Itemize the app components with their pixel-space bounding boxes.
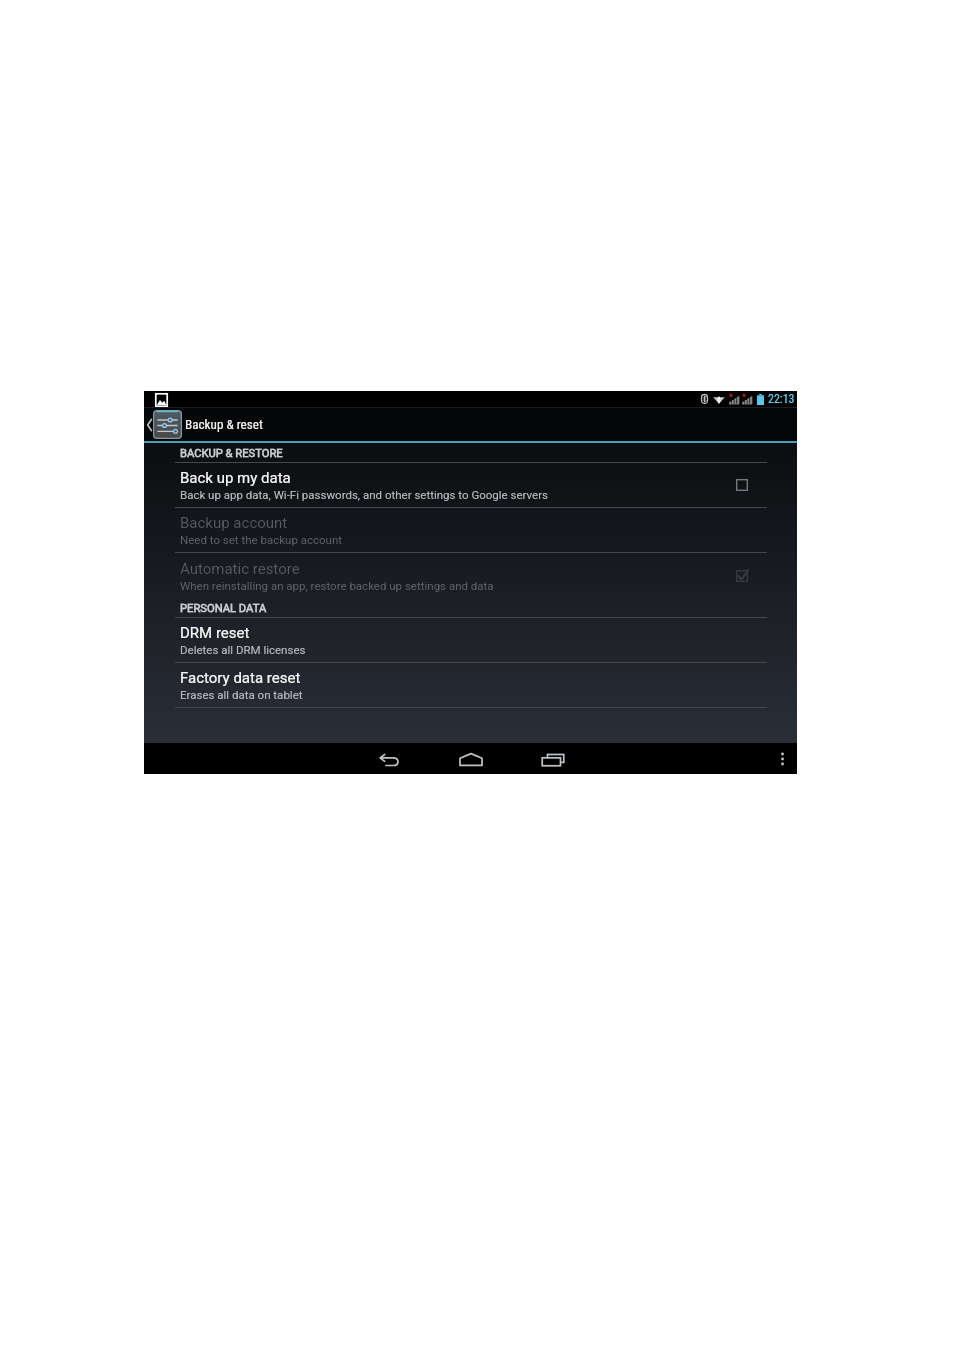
button[interactable]: Home bbox=[430, 743, 512, 774]
button[interactable]: Backup & reset, navigate up bbox=[144, 408, 797, 441]
staticText: Back up my data bbox=[180, 469, 291, 487]
button[interactable]: Recent apps bbox=[512, 743, 594, 774]
button[interactable]: Factory data reset. Erases all data on t… bbox=[144, 663, 797, 708]
button[interactable]: Back up my data. Back up app data, Wi-Fi… bbox=[144, 463, 797, 508]
staticText: Backup & reset bbox=[185, 417, 263, 432]
button[interactable]: Checked checkbox bbox=[736, 553, 797, 598]
staticText: Erases all data on tablet bbox=[180, 688, 303, 701]
staticText: BACKUP & RESTORE bbox=[180, 447, 283, 460]
staticText: When reinstalling an app, restore backed… bbox=[180, 579, 494, 592]
staticText: Deletes all DRM licenses bbox=[180, 643, 306, 656]
staticText: Back up app data, Wi-Fi passwords, and o… bbox=[180, 488, 549, 501]
button[interactable]: Unchecked checkbox bbox=[736, 463, 797, 507]
button[interactable]: Automatic restore. When reinstalling an … bbox=[144, 553, 797, 598]
staticText: PERSONAL DATA bbox=[180, 602, 267, 615]
button[interactable]: More options bbox=[767, 743, 797, 774]
button[interactable]: DRM reset. Deletes all DRM licenses bbox=[144, 618, 797, 663]
staticText: Backup account bbox=[180, 514, 288, 532]
button[interactable]: Back bbox=[348, 743, 430, 774]
staticText: 22:13 bbox=[768, 392, 795, 406]
button[interactable]: Backup account. Need to set the backup a… bbox=[144, 508, 797, 553]
staticText: DRM reset bbox=[180, 624, 250, 642]
staticText: Need to set the backup account bbox=[180, 533, 343, 546]
staticText: Factory data reset bbox=[180, 669, 301, 687]
staticText: Automatic restore bbox=[180, 560, 300, 578]
